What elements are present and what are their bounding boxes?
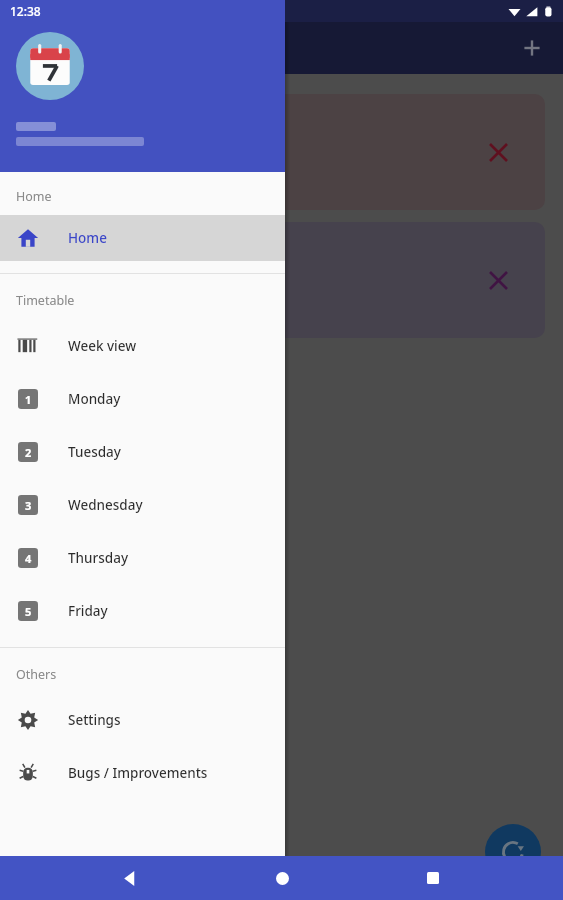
staticText: Week view xyxy=(68,337,137,355)
button[interactable]: Delete xyxy=(14,94,545,210)
staticText: Monday xyxy=(68,390,121,408)
staticText: Others xyxy=(16,666,57,683)
button[interactable] xyxy=(0,0,285,172)
button[interactable]: 2 xyxy=(0,425,285,478)
button[interactable]: Add xyxy=(511,27,553,69)
button[interactable]: Delete xyxy=(481,263,515,297)
staticText: Tuesday xyxy=(68,443,121,461)
staticText: Home xyxy=(68,229,107,247)
staticText: Wednesday xyxy=(68,496,143,514)
staticText: Friday xyxy=(68,602,108,620)
staticText: 4 xyxy=(25,551,32,566)
staticText: Settings xyxy=(68,711,121,729)
staticText: Bugs / Improvements xyxy=(68,764,208,782)
staticText: 5 xyxy=(25,604,32,619)
button[interactable]: Refresh xyxy=(485,824,541,880)
button[interactable]: Home xyxy=(260,856,304,900)
button[interactable]: Delete xyxy=(14,222,545,338)
button[interactable]: 3 xyxy=(0,478,285,531)
button[interactable]: 5 xyxy=(0,584,285,637)
staticText: Timetable xyxy=(16,292,75,309)
button[interactable]: 1 xyxy=(0,372,285,425)
button[interactable]: Week view xyxy=(0,319,285,372)
button[interactable]: 4 xyxy=(0,531,285,584)
staticText: 3 xyxy=(25,498,32,513)
button[interactable]: Bugs / Improvements xyxy=(0,746,285,799)
staticText: 1 xyxy=(25,392,32,407)
button[interactable]: Back xyxy=(108,856,152,900)
staticText: 2 xyxy=(25,445,32,460)
staticText: Thursday xyxy=(68,549,129,567)
button[interactable]: Delete xyxy=(481,135,515,169)
button[interactable]: Recent apps xyxy=(411,856,455,900)
button[interactable]: Settings xyxy=(0,693,285,746)
staticText: 12:38 xyxy=(10,3,41,19)
staticText: Home xyxy=(16,188,52,205)
button[interactable]: Home xyxy=(0,215,285,261)
